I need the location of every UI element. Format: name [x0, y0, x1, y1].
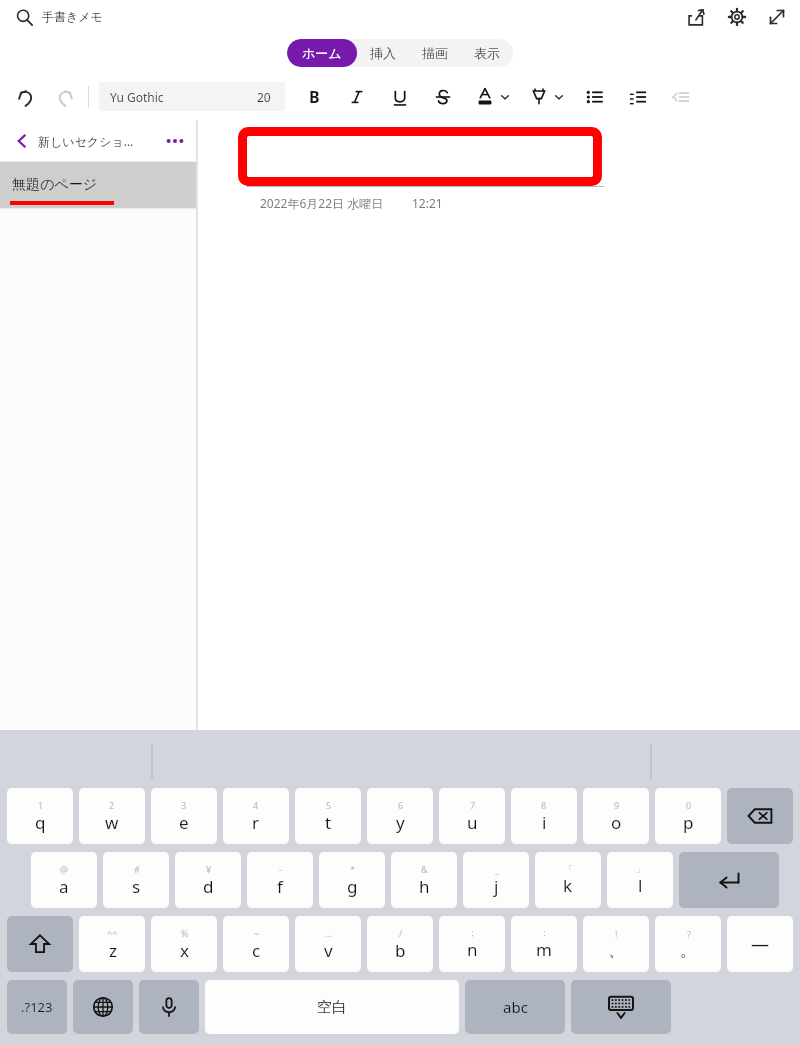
staticText: s — [132, 875, 141, 898]
button[interactable]: Voice input — [139, 980, 199, 1034]
staticText: 2022年6月22日 水曜日 — [260, 195, 384, 211]
staticText: p — [683, 811, 694, 834]
staticText: % — [181, 927, 189, 939]
button[interactable]: 8 — [511, 788, 577, 844]
staticText: 、 — [608, 940, 625, 961]
button[interactable]: Change keyboard — [73, 980, 133, 1034]
staticText: e — [179, 811, 189, 834]
button[interactable]: 挿入 — [357, 39, 409, 67]
button[interactable]: ^^ — [79, 916, 145, 972]
button[interactable]: / — [367, 916, 433, 972]
button[interactable]: ? — [655, 916, 721, 972]
staticText: 描画 — [422, 45, 448, 61]
staticText: ? — [687, 928, 691, 940]
button[interactable]: Decrease indent — [666, 82, 696, 112]
button[interactable]: 6 — [367, 788, 433, 844]
button[interactable]: 「 — [535, 852, 601, 908]
button[interactable]: Shift — [7, 916, 73, 972]
button[interactable]: Font color — [471, 85, 512, 109]
button[interactable]: Numbered list — [623, 82, 653, 112]
button[interactable]: Expand — [762, 2, 792, 32]
staticText: r — [252, 811, 260, 834]
staticText: — — [751, 932, 769, 957]
staticText: ^^ — [107, 927, 118, 939]
button[interactable] — [428, 82, 458, 112]
staticText: o — [611, 811, 622, 834]
button[interactable]: Share — [682, 2, 712, 32]
button[interactable]: abc — [465, 980, 565, 1034]
button[interactable]: ~ — [223, 916, 289, 972]
button[interactable]: Redo — [49, 82, 79, 112]
button[interactable]: ! — [583, 916, 649, 972]
button[interactable]: 9 — [583, 788, 649, 844]
button[interactable]: Search — [10, 3, 38, 31]
staticText: 手書きメモ — [42, 9, 103, 24]
button[interactable]: Highlight — [525, 85, 566, 109]
staticText: 4 — [253, 799, 259, 811]
button[interactable] — [385, 82, 415, 112]
staticText: 12:21 — [412, 195, 443, 211]
button[interactable] — [342, 82, 372, 112]
button[interactable]: 描画 — [409, 39, 461, 67]
button[interactable]: Backspace — [727, 788, 793, 844]
button[interactable]: Settings — [722, 2, 752, 32]
staticText: i — [542, 811, 547, 834]
staticText: 0 — [686, 799, 692, 811]
button[interactable]: 2 — [79, 788, 145, 844]
staticText: 無題のページ — [12, 176, 97, 194]
button[interactable]: 0 — [655, 788, 721, 844]
button[interactable]: — — [727, 916, 793, 972]
staticText: .?123 — [21, 998, 53, 1016]
staticText: & — [421, 863, 428, 875]
button[interactable]: B — [299, 82, 329, 112]
staticText: b — [395, 939, 406, 962]
button[interactable]: 3 — [151, 788, 217, 844]
button[interactable]: ¥ — [175, 852, 241, 908]
button[interactable]: 空白 — [205, 980, 459, 1034]
staticText: 」 — [636, 863, 645, 874]
staticText: 6 — [398, 799, 404, 811]
staticText: * — [350, 863, 355, 875]
staticText: l — [638, 874, 643, 897]
button[interactable]: 1 — [7, 788, 73, 844]
staticText: n — [467, 938, 478, 961]
button[interactable]: - — [247, 852, 313, 908]
button[interactable] — [238, 127, 602, 186]
button[interactable]: @ — [31, 852, 97, 908]
button[interactable]: # — [103, 852, 169, 908]
button[interactable]: & — [391, 852, 457, 908]
button[interactable]: 5 — [295, 788, 361, 844]
staticText: w — [105, 811, 119, 834]
button[interactable]: * — [319, 852, 385, 908]
button[interactable]: 」 — [607, 852, 673, 908]
button[interactable]: Yu Gothic — [99, 82, 243, 111]
button[interactable]: Hide keyboard — [571, 980, 671, 1034]
staticText: g — [347, 875, 358, 898]
staticText: - — [279, 863, 282, 875]
staticText: 挿入 — [370, 45, 396, 61]
button[interactable]: … — [295, 916, 361, 972]
staticText: 表示 — [474, 45, 500, 61]
button[interactable]: 4 — [223, 788, 289, 844]
button[interactable]: 7 — [439, 788, 505, 844]
button[interactable]: % — [151, 916, 217, 972]
button[interactable]: Bulleted list — [580, 82, 610, 112]
button[interactable]: .?123 — [7, 980, 67, 1034]
staticText: k — [563, 874, 573, 897]
button[interactable]: Undo — [11, 82, 41, 112]
staticText: u — [467, 811, 478, 834]
button[interactable]: ； — [439, 916, 505, 972]
staticText: 7 — [470, 799, 476, 811]
button[interactable]: _ — [463, 852, 529, 908]
staticText: ! — [615, 928, 618, 940]
button[interactable]: 20 — [243, 82, 285, 111]
button[interactable]: 無題のページ — [0, 162, 196, 208]
button[interactable]: ホーム — [287, 39, 357, 67]
staticText: ¥ — [206, 863, 212, 875]
button[interactable]: 表示 — [461, 39, 513, 67]
button[interactable]: Return — [679, 852, 779, 908]
button[interactable]: 新しいセクショ… — [0, 120, 196, 161]
button[interactable]: ： — [511, 916, 577, 972]
staticText: ホーム — [302, 45, 342, 61]
staticText: j — [494, 875, 499, 898]
